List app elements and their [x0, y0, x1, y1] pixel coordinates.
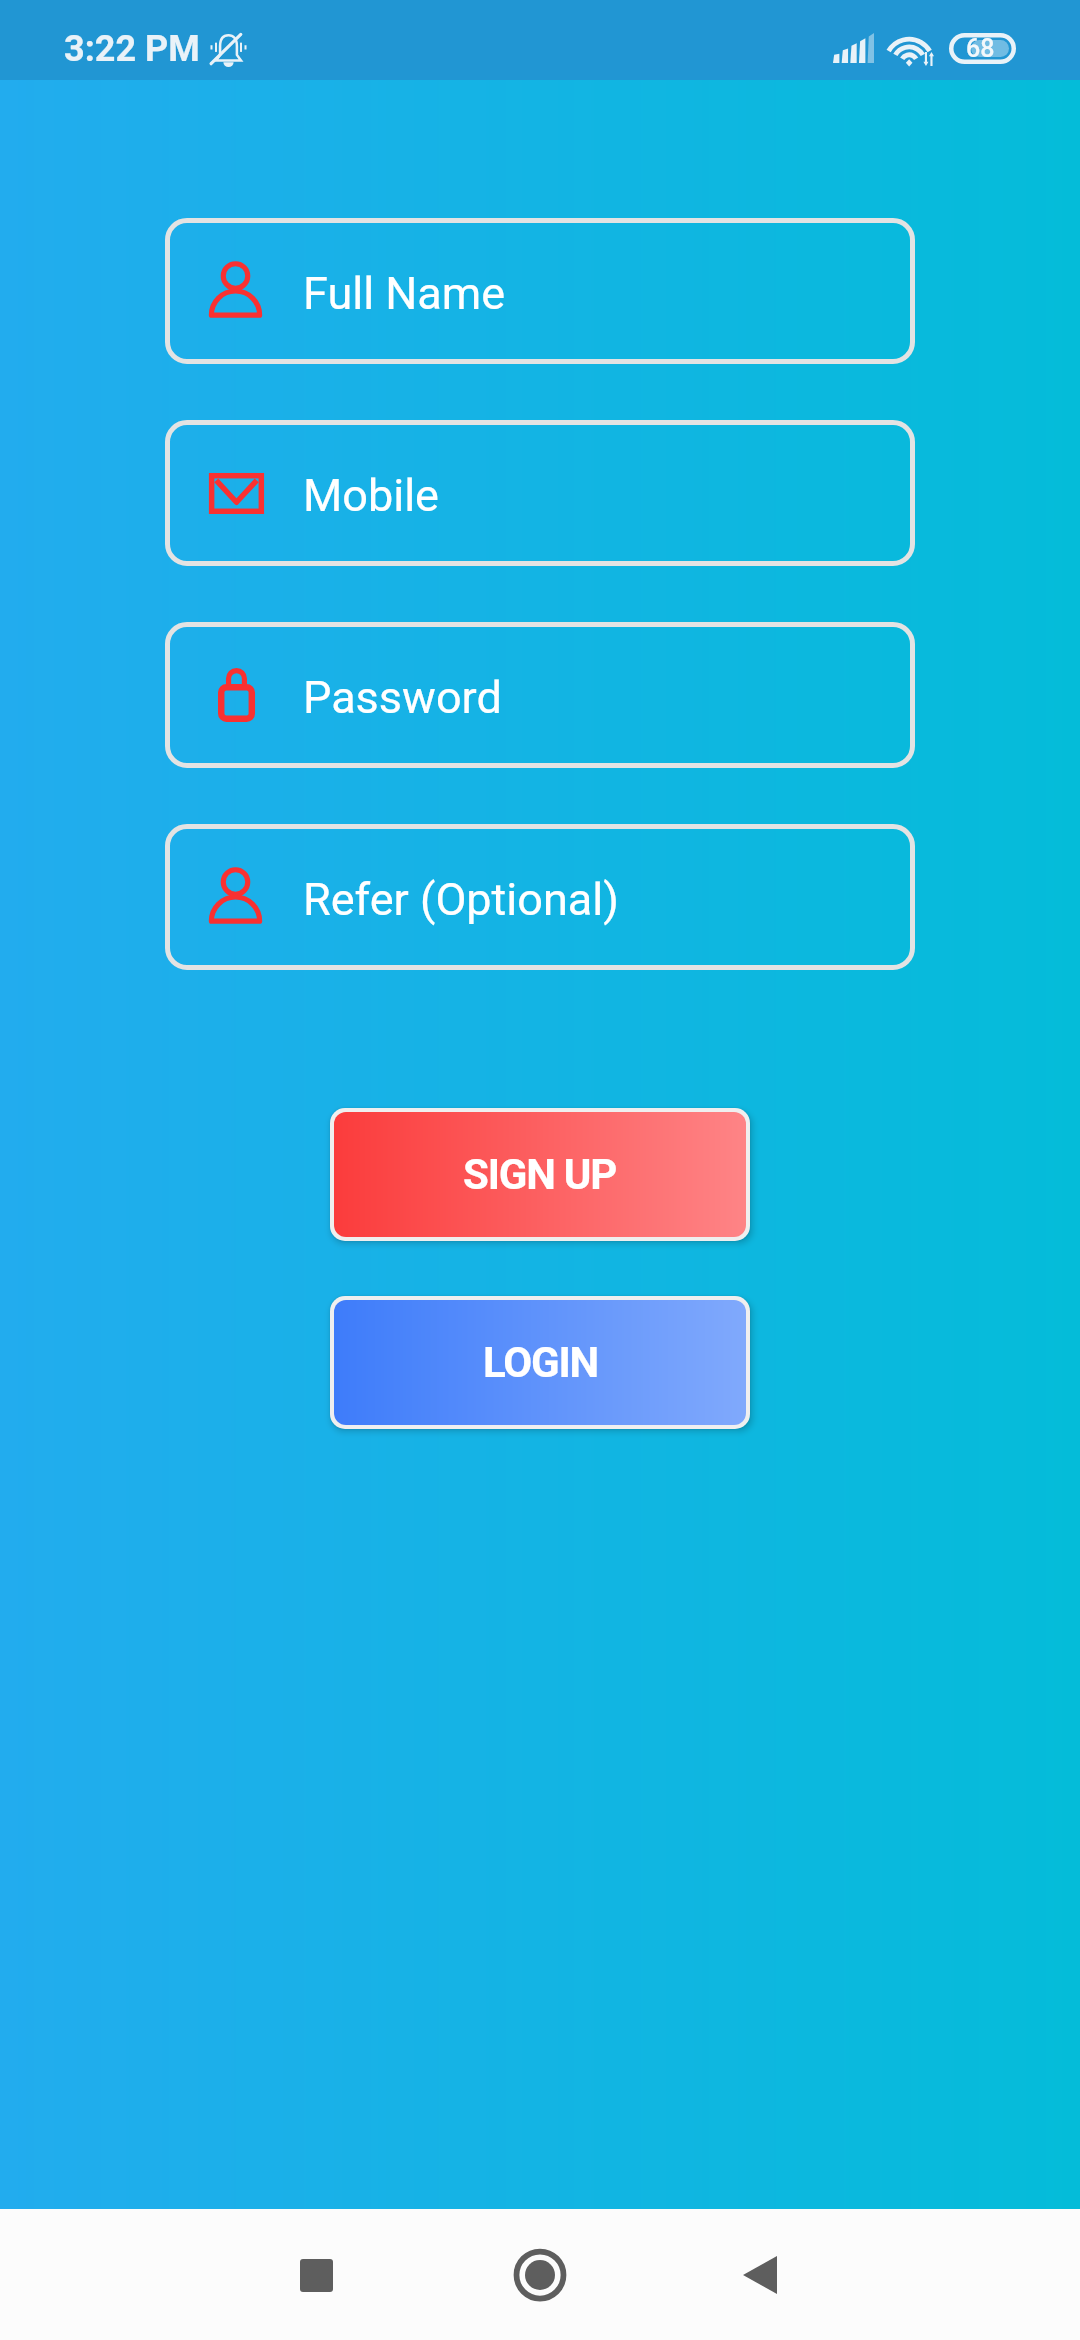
staticText: Refer (Optional): [303, 873, 619, 926]
staticText: LOGIN: [483, 1338, 598, 1387]
staticText: Password: [303, 671, 502, 724]
button[interactable]: Full Name: [165, 218, 915, 364]
button[interactable]: Back: [700, 2215, 820, 2335]
button[interactable]: Recent apps: [256, 2215, 376, 2335]
button[interactable]: Home: [480, 2215, 600, 2335]
staticText: 3:22 PM: [64, 28, 200, 70]
staticText: Mobile: [303, 469, 439, 522]
staticText: SIGN UP: [463, 1150, 617, 1199]
button[interactable]: Mobile: [165, 420, 915, 566]
button[interactable]: LOGIN: [334, 1300, 746, 1425]
button[interactable]: SIGN UP: [334, 1112, 746, 1237]
staticText: Full Name: [303, 267, 506, 320]
staticText: 68: [966, 34, 995, 63]
button[interactable]: Password: [165, 622, 915, 768]
button[interactable]: Refer (Optional): [165, 824, 915, 970]
